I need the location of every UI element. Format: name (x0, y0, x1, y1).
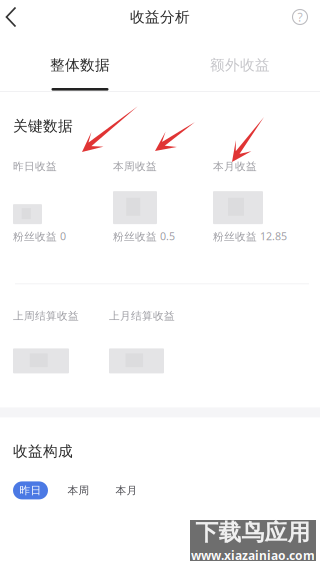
staticText: 上周结算收益 (13, 309, 79, 322)
staticText: 本月收益 (213, 160, 257, 173)
staticText: 本周 (67, 484, 89, 497)
button[interactable]: Back (0, 0, 22, 33)
staticText: 下载鸟应用 (195, 519, 310, 546)
button[interactable]: 本周 (61, 481, 96, 499)
staticText: 粉丝收益 0 (13, 229, 66, 243)
staticText: 粉丝收益 0.5 (113, 229, 175, 243)
button[interactable]: 昨日 (13, 481, 48, 499)
staticText: www.xiazainiao.com (191, 547, 315, 563)
staticText: 整体数据 (50, 56, 110, 74)
staticText: 本周收益 (113, 160, 157, 173)
staticText: 收益分析 (130, 8, 190, 26)
staticText: 收益构成 (13, 442, 73, 460)
button[interactable]: Help (280, 1, 320, 33)
staticText: 上月结算收益 (109, 309, 175, 322)
staticText: 关键数据 (13, 117, 73, 135)
staticText: 本月 (115, 484, 137, 497)
staticText: 昨日收益 (13, 160, 57, 173)
button[interactable]: 整体数据 (0, 56, 160, 91)
staticText: 额外收益 (210, 56, 270, 74)
button[interactable]: 本月 (109, 481, 144, 499)
button[interactable]: 额外收益 (160, 56, 320, 91)
staticText: 昨日 (19, 484, 41, 497)
staticText: 粉丝收益 12.85 (213, 229, 287, 243)
staticText: ? (297, 9, 302, 25)
